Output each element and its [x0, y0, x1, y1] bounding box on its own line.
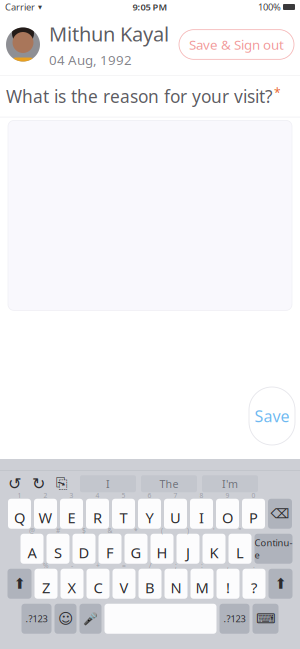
button[interactable]: ⌨ — [252, 604, 278, 634]
staticText: % — [43, 561, 49, 570]
staticText: " — [238, 526, 241, 535]
button[interactable]: Save & Sign out — [179, 30, 294, 59]
button[interactable]: , — [216, 569, 239, 599]
button[interactable]: 1 — [8, 499, 31, 529]
staticText: C — [93, 578, 102, 597]
button[interactable]: space — [104, 604, 216, 634]
button[interactable]: 2 — [34, 499, 57, 529]
button[interactable]: ⬆ — [7, 569, 31, 599]
staticText: ▾ — [38, 2, 42, 12]
staticText: D — [78, 543, 89, 562]
staticText: T — [119, 508, 127, 527]
staticText: I — [106, 477, 110, 491]
button[interactable]: " — [228, 534, 251, 564]
staticText: 8 — [199, 491, 203, 500]
button[interactable]: ☺ — [54, 604, 76, 634]
button[interactable]: = — [112, 569, 135, 599]
button[interactable]: @ — [20, 534, 43, 564]
button[interactable]: : — [190, 569, 213, 599]
staticText: . — [253, 561, 255, 570]
staticText: 4 — [95, 491, 99, 500]
staticText: I'm — [222, 477, 238, 491]
button[interactable]: Paste — [56, 477, 68, 491]
button[interactable]: * — [124, 534, 147, 564]
button[interactable]: I'm — [202, 475, 258, 492]
button[interactable]: + — [86, 569, 109, 599]
staticText: ⬆ — [13, 575, 25, 592]
button[interactable]: Continue — [254, 534, 292, 564]
button[interactable]: - — [60, 569, 83, 599]
button[interactable]: 5 — [112, 499, 135, 529]
staticText: ☺ — [58, 610, 73, 627]
button[interactable]: / — [138, 569, 161, 599]
button[interactable]: The — [141, 475, 197, 492]
staticText: 9 — [225, 491, 229, 500]
staticText: ⬆ — [274, 575, 286, 592]
button[interactable]: .?123 — [219, 604, 249, 634]
staticText: # — [56, 526, 60, 535]
button[interactable]: ⌫ — [268, 499, 292, 529]
staticText: G — [130, 543, 141, 562]
button[interactable]: # — [46, 534, 69, 564]
staticText: , — [227, 561, 229, 570]
button[interactable]: 6 — [138, 499, 161, 529]
staticText: Save — [254, 405, 289, 427]
button[interactable]: ' — [202, 534, 225, 564]
staticText: 3 — [69, 491, 73, 500]
button[interactable]: 🎤 — [79, 604, 101, 634]
staticText: 🎤 — [83, 612, 98, 626]
button[interactable]: ) — [176, 534, 199, 564]
button[interactable]: 8 — [190, 499, 213, 529]
staticText: 7 — [173, 491, 177, 500]
staticText: .?123 — [223, 613, 245, 625]
button[interactable]: 0 — [242, 499, 265, 529]
staticText: ↻ — [32, 475, 45, 493]
button[interactable]: $ — [72, 534, 95, 564]
staticText: H — [156, 543, 167, 562]
staticText: U — [170, 508, 181, 527]
staticText: P — [249, 508, 258, 527]
button[interactable]: 7 — [164, 499, 187, 529]
staticText: M — [195, 578, 208, 597]
button[interactable]: ⬆ — [268, 569, 292, 599]
button[interactable]: 9 — [216, 499, 239, 529]
staticText: ⎘ — [56, 477, 68, 491]
button[interactable]: 3 — [60, 499, 83, 529]
staticText: : — [201, 561, 203, 570]
staticText: L — [236, 543, 244, 562]
button[interactable]: & — [98, 534, 121, 564]
staticText: A — [27, 543, 36, 562]
button[interactable]: I — [80, 475, 136, 492]
button[interactable]: ( — [150, 534, 173, 564]
button[interactable]: Redo — [32, 475, 45, 493]
staticText: 6 — [147, 491, 151, 500]
staticText: 9:05 PM — [132, 1, 167, 13]
button[interactable]: . — [242, 569, 265, 599]
staticText: X — [67, 578, 76, 597]
staticText: 5 — [121, 491, 125, 500]
staticText: * — [274, 85, 281, 101]
button[interactable]: ; — [164, 569, 187, 599]
staticText: S — [54, 543, 62, 562]
staticText: J — [186, 543, 190, 562]
staticText: .?123 — [25, 613, 47, 625]
staticText: ' — [213, 526, 215, 535]
staticText: ; — [175, 561, 177, 570]
staticText: Y — [145, 508, 153, 527]
staticText: ? — [251, 578, 257, 597]
staticText: ( — [161, 526, 163, 535]
button[interactable]: .?123 — [21, 604, 51, 634]
staticText: I — [199, 508, 204, 527]
button[interactable]: Undo — [8, 475, 21, 493]
staticText: 04 Aug, 1992 — [49, 51, 132, 69]
button[interactable]: 4 — [86, 499, 109, 529]
staticText: N — [170, 578, 181, 597]
staticText: F — [106, 543, 114, 562]
staticText: @ — [29, 526, 35, 535]
staticText: & — [107, 526, 112, 535]
button[interactable]: % — [34, 569, 57, 599]
staticText: Mithun Kayal — [49, 20, 169, 47]
staticText: / — [149, 561, 151, 570]
staticText: 0 — [251, 491, 255, 500]
button[interactable]: Save — [249, 387, 295, 445]
